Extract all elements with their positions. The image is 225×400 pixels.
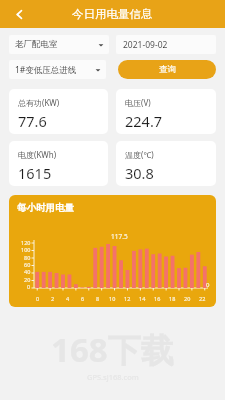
staticText: 12 xyxy=(124,295,131,302)
staticText: 16 xyxy=(154,295,161,302)
staticText: 20 xyxy=(184,295,191,302)
staticText: 40 xyxy=(24,268,31,275)
staticText: 30.8 xyxy=(125,163,154,183)
staticText: 2 xyxy=(51,295,55,302)
staticText: 每小时用电量 xyxy=(17,202,74,214)
staticText: 4 xyxy=(66,295,70,302)
staticText: 老厂配电室 xyxy=(15,39,58,50)
staticText: 0 xyxy=(36,295,40,302)
staticText: 1#变低压总进线 xyxy=(15,64,77,76)
staticText: GPS.sj168.com xyxy=(87,372,139,382)
staticText: 6 xyxy=(81,295,85,302)
button[interactable]: 电压(V) xyxy=(116,89,216,134)
staticText: 77.6 xyxy=(18,111,47,131)
button[interactable]: 电度(KWh) xyxy=(9,141,108,186)
staticText: 224.7 xyxy=(125,111,163,131)
staticText: 80 xyxy=(24,254,31,261)
staticText: 查询 xyxy=(159,64,176,75)
button[interactable]: 老厂配电室 xyxy=(9,35,109,54)
staticText: 18 xyxy=(169,295,176,302)
button[interactable]: 2021-09-02 xyxy=(116,35,216,54)
staticText: 1615 xyxy=(18,163,52,183)
staticText: 电压(V) xyxy=(125,97,151,108)
staticText: 总有功(KW) xyxy=(18,97,60,108)
staticText: 120 xyxy=(21,239,31,246)
button[interactable]: 查询 xyxy=(118,60,216,79)
button[interactable]: 1#变低压总进线 xyxy=(9,60,106,79)
staticText: 168下载 xyxy=(51,327,174,372)
staticText: 20 xyxy=(24,276,31,283)
staticText: 100 xyxy=(21,246,31,253)
staticText: 2021-09-02 xyxy=(123,39,168,51)
button[interactable]: 温度(℃) xyxy=(116,141,216,186)
staticText: 8 xyxy=(96,295,100,302)
staticText: 0 xyxy=(27,283,31,290)
staticText: 14 xyxy=(139,295,146,302)
staticText: 温度(℃) xyxy=(125,149,154,160)
staticText: 22 xyxy=(199,295,206,302)
button[interactable]: Back xyxy=(8,3,30,25)
staticText: 10 xyxy=(109,295,116,302)
staticText: 0 xyxy=(206,281,210,289)
button[interactable]: 总有功(KW) xyxy=(9,89,108,134)
staticText: 今日用电量信息 xyxy=(72,7,153,21)
staticText: 电度(KWh) xyxy=(18,149,57,160)
staticText: 60 xyxy=(24,261,31,268)
staticText: 117.5 xyxy=(111,232,128,241)
